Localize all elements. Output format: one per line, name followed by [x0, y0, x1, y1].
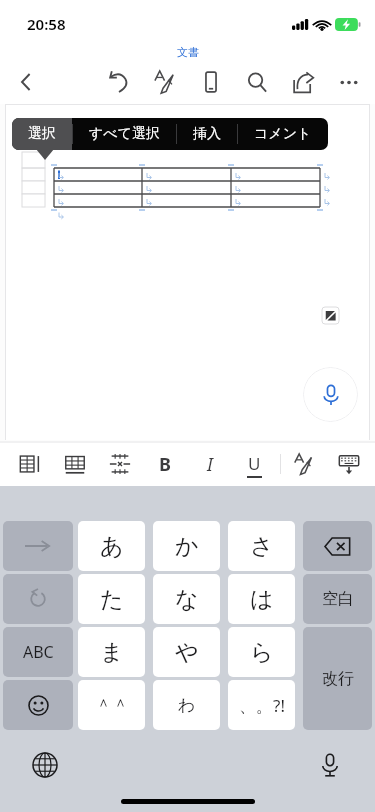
- button[interactable]: 、。?!: [228, 680, 295, 730]
- button[interactable]: すべて選択: [73, 118, 176, 150]
- button[interactable]: Insert row: [52, 442, 97, 486]
- button[interactable]: さ: [228, 521, 295, 571]
- button[interactable]: な: [153, 574, 220, 624]
- staticText: 選択: [28, 125, 56, 143]
- staticText: な: [175, 585, 199, 614]
- button[interactable]: Back: [4, 60, 48, 104]
- button[interactable]: Undo: [96, 60, 142, 104]
- button[interactable]: あ: [78, 521, 145, 571]
- button[interactable]: は: [228, 574, 295, 624]
- button[interactable]: Italic: [187, 442, 232, 486]
- staticText: わ: [178, 695, 196, 716]
- staticText: た: [100, 585, 124, 614]
- button[interactable]: Dictation: [307, 742, 353, 788]
- button[interactable]: Hide keyboard: [326, 442, 371, 486]
- staticText: すべて選択: [89, 125, 160, 143]
- button[interactable]: Change keyboard: [22, 742, 68, 788]
- staticText: さ: [250, 532, 274, 561]
- staticText: I: [207, 452, 213, 477]
- button[interactable]: 改行: [303, 627, 372, 730]
- button[interactable]: Delete: [303, 521, 372, 571]
- staticText: 20:58: [27, 14, 66, 34]
- staticText: か: [175, 532, 199, 561]
- staticText: や: [175, 638, 199, 667]
- button[interactable]: 挿入: [177, 118, 237, 150]
- button[interactable]: More: [326, 60, 372, 104]
- staticText: ＾＾: [95, 695, 129, 716]
- staticText: 、。?!: [239, 694, 285, 717]
- staticText: あ: [100, 532, 124, 561]
- staticText: U: [248, 452, 261, 475]
- button[interactable]: か: [153, 521, 220, 571]
- button[interactable]: ま: [78, 627, 145, 677]
- staticText: 文書: [177, 45, 199, 59]
- button[interactable]: Markup: [142, 60, 188, 104]
- button[interactable]: Resize table: [322, 307, 339, 324]
- staticText: B: [159, 452, 171, 477]
- staticText: 改行: [322, 669, 354, 689]
- button[interactable]: ＾＾: [78, 680, 145, 730]
- button[interactable]: コメント: [238, 118, 328, 150]
- staticText: ま: [100, 638, 124, 667]
- button[interactable]: や: [153, 627, 220, 677]
- button[interactable]: Search: [234, 60, 280, 104]
- button[interactable]: Delete cells: [97, 442, 142, 486]
- button[interactable]: 空白: [303, 574, 372, 624]
- button[interactable]: Bold: [142, 442, 187, 486]
- button[interactable]: Dictate: [303, 367, 358, 422]
- button[interactable]: Share: [280, 60, 326, 104]
- staticText: 空白: [322, 589, 354, 609]
- button[interactable]: ら: [228, 627, 295, 677]
- staticText: ら: [250, 638, 274, 667]
- button[interactable]: Undo: [3, 574, 73, 624]
- staticText: ABC: [23, 641, 54, 663]
- button[interactable]: Screen layout: [188, 60, 234, 104]
- button[interactable]: Emoji: [3, 680, 73, 730]
- button[interactable]: ABC: [3, 627, 73, 677]
- button[interactable]: 選択: [12, 118, 72, 150]
- button[interactable]: Markup: [281, 442, 326, 486]
- button[interactable]: Next candidate: [3, 521, 73, 571]
- button[interactable]: わ: [153, 680, 220, 730]
- button[interactable]: た: [78, 574, 145, 624]
- staticText: コメント: [254, 125, 312, 143]
- staticText: は: [250, 585, 274, 614]
- staticText: 挿入: [193, 125, 221, 143]
- button[interactable]: Underline: [232, 442, 277, 486]
- button[interactable]: Insert column: [7, 442, 52, 486]
